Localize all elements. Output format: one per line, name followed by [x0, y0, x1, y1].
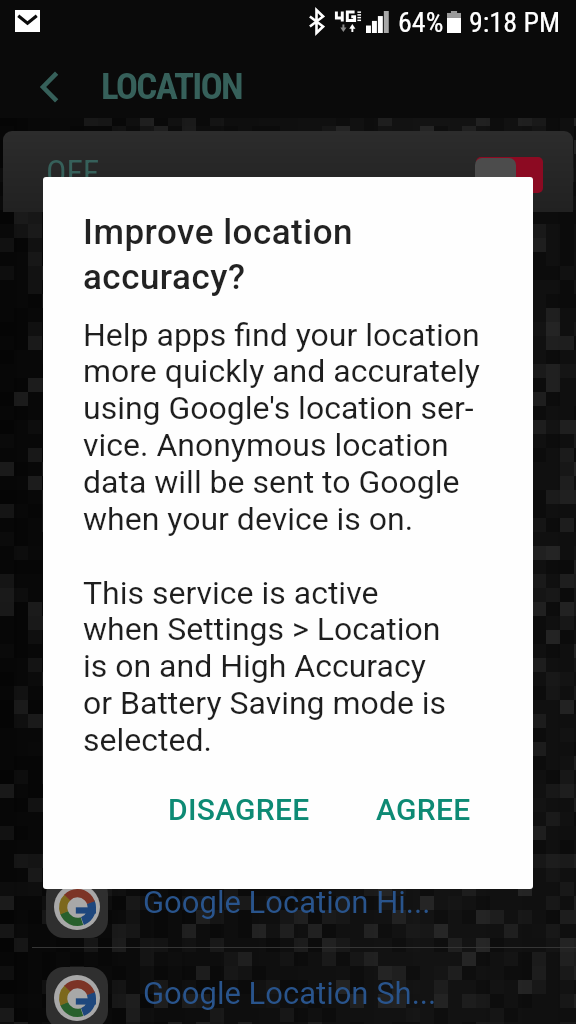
- button[interactable]: DISAGREE: [150, 778, 328, 841]
- staticText: DISAGREE: [168, 792, 310, 827]
- staticText: Help apps find your location more quickl…: [83, 316, 480, 538]
- staticText: Google Location Sh...: [143, 975, 437, 1011]
- button[interactable]: Location toggle: [473, 157, 545, 193]
- staticText: Improve location accuracy?: [83, 212, 354, 297]
- staticText: AGREE: [376, 792, 471, 827]
- staticText: This service is active when Settings > L…: [83, 574, 447, 759]
- button[interactable]: LOCATION: [101, 65, 242, 108]
- button[interactable]: Google Location Sh...: [0, 953, 576, 1024]
- button[interactable]: Google Location Hi...: [0, 862, 576, 953]
- button[interactable]: Unread mail: [15, 10, 40, 32]
- button[interactable]: AGREE: [358, 778, 489, 841]
- button[interactable]: OFF: [3, 131, 573, 212]
- staticText: Google Location Hi...: [143, 884, 431, 920]
- staticText: 9:18 PM: [469, 6, 561, 39]
- staticText: 64%: [398, 6, 444, 39]
- button[interactable]: Back: [41, 72, 58, 102]
- staticText: OFF: [46, 152, 100, 192]
